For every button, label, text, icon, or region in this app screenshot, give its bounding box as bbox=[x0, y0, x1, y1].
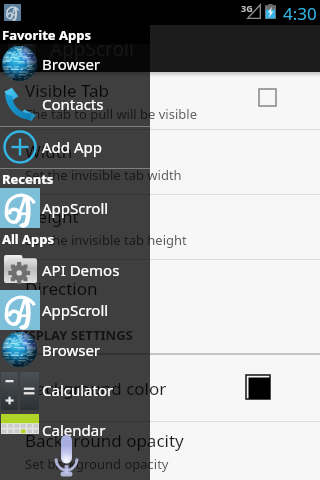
button[interactable]: Height bbox=[0, 195, 320, 259]
staticText: Calendar bbox=[42, 420, 106, 440]
staticText: The tab to pull will be visible bbox=[25, 105, 197, 123]
button[interactable]: Visible Tab bbox=[0, 72, 320, 129]
button[interactable]: Direction bbox=[0, 260, 320, 316]
button[interactable]: Contacts bbox=[0, 84, 150, 124]
staticText: Set the invisible tab width bbox=[25, 166, 182, 184]
staticText: DISPLAY SETTINGS bbox=[14, 326, 133, 344]
staticText: 4:30 bbox=[283, 2, 317, 25]
staticText: Browser bbox=[42, 54, 101, 74]
button[interactable]: Add App bbox=[0, 127, 150, 167]
button[interactable]: Background color bbox=[0, 355, 320, 421]
button[interactable]: Browser bbox=[0, 44, 150, 84]
staticText: Contacts bbox=[42, 94, 104, 114]
staticText: Height bbox=[25, 205, 79, 228]
button[interactable]: AppScroll bbox=[0, 290, 150, 330]
staticText: AppScroll bbox=[42, 198, 109, 218]
staticText: AppScroll bbox=[42, 300, 109, 320]
staticText: Direction bbox=[25, 277, 98, 300]
staticText: Visible Tab bbox=[25, 79, 110, 102]
button[interactable]: Background opacity bbox=[0, 422, 320, 480]
staticText: API Demos bbox=[42, 260, 120, 280]
staticText: Background opacity bbox=[25, 429, 184, 452]
button[interactable]: Width bbox=[0, 130, 320, 194]
button[interactable]: AppScroll bbox=[0, 188, 150, 228]
staticText: Width bbox=[25, 140, 73, 163]
staticText: Set background opacity bbox=[25, 455, 169, 473]
staticText: 3G bbox=[241, 2, 253, 14]
staticText: All Apps bbox=[2, 230, 55, 248]
button[interactable]: API Demos bbox=[0, 250, 150, 290]
staticText: Browser bbox=[42, 340, 101, 360]
staticText: Add App bbox=[42, 137, 102, 157]
staticText: Recents bbox=[2, 170, 54, 188]
button[interactable]: Calculator bbox=[0, 370, 150, 410]
button[interactable]: Calendar bbox=[0, 410, 150, 450]
staticText: Calculator bbox=[42, 380, 114, 400]
button[interactable]: Browser bbox=[0, 330, 150, 370]
staticText: AppScroll bbox=[50, 36, 134, 62]
staticText: Background color bbox=[25, 377, 167, 400]
staticText: Set the invisible tab height bbox=[25, 231, 187, 249]
other: Voice input bbox=[54, 435, 79, 477]
staticText: Favorite Apps bbox=[2, 26, 91, 44]
